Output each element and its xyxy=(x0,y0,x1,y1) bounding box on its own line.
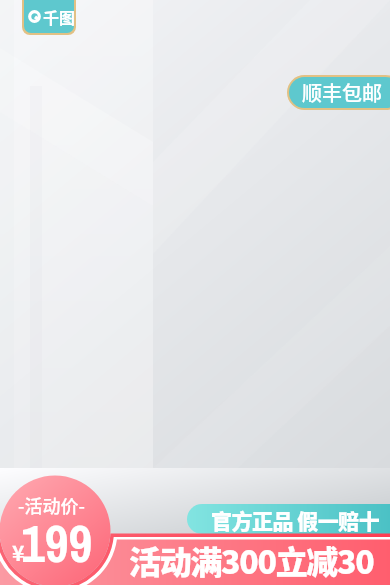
staticText: ¥ xyxy=(12,537,25,567)
staticText: 199 xyxy=(21,508,93,578)
staticText: 官方正品 假一赔十 xyxy=(211,505,380,534)
button[interactable]: 顺丰包邮 xyxy=(289,77,390,108)
button[interactable]: 千图 home xyxy=(24,0,74,33)
button[interactable]: -活动价- xyxy=(0,477,110,585)
staticText: -活动价- xyxy=(18,492,85,518)
button[interactable]: 官方正品 假一赔十 xyxy=(187,504,390,534)
button[interactable]: 活动满300立减30 xyxy=(129,537,374,583)
staticText: 顺丰包邮 xyxy=(302,78,382,107)
staticText: 千图 xyxy=(43,5,74,28)
